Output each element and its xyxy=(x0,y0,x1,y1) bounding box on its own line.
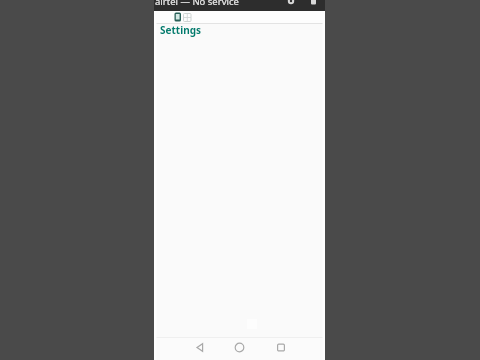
button[interactable] xyxy=(268,337,325,360)
button[interactable]: Settings xyxy=(154,24,325,39)
button[interactable] xyxy=(154,337,211,360)
button[interactable] xyxy=(211,337,268,360)
staticText: Settings xyxy=(160,23,201,37)
staticText: airtel — No service xyxy=(155,0,239,6)
